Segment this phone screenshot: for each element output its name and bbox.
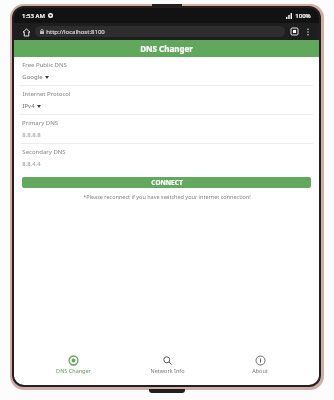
button[interactable]: DNS Changer: [38, 353, 108, 377]
button[interactable]: CONNECT: [22, 177, 311, 188]
staticText: Network Info: [150, 367, 185, 374]
button[interactable]: http://localhost:8100: [35, 26, 285, 37]
staticText: Primary DNS: [22, 119, 58, 127]
button[interactable]: About: [225, 353, 295, 377]
staticText: Free Public DNS: [22, 61, 67, 69]
button[interactable]: Free Public DNS: [14, 57, 319, 85]
staticText: DNS Changer: [56, 367, 91, 374]
staticText: Internet Protocol: [22, 90, 71, 98]
staticText: Google: [22, 73, 43, 81]
staticText: IPv4: [22, 102, 35, 110]
staticText: *Please reconnect if you have switched y…: [83, 193, 251, 200]
staticText: DNS Changer: [140, 43, 193, 54]
staticText: CONNECT: [151, 178, 183, 187]
button[interactable]: Tabs: [289, 26, 300, 37]
button[interactable]: Secondary DNS: [14, 144, 319, 172]
button[interactable]: Home: [20, 26, 32, 38]
staticText: 8.8.8.8: [22, 131, 41, 139]
button[interactable]: Network Info: [132, 353, 202, 377]
staticText: 100%: [295, 12, 311, 20]
staticText: http://localhost:8100: [46, 28, 105, 36]
staticText: 8.8.4.4: [22, 160, 41, 168]
staticText: Secondary DNS: [22, 148, 66, 156]
button[interactable]: Primary DNS: [14, 115, 319, 143]
staticText: 1:53 AM: [22, 12, 45, 20]
button[interactable]: Internet Protocol: [14, 86, 319, 114]
button[interactable]: More options: [302, 26, 313, 37]
staticText: About: [252, 367, 268, 374]
